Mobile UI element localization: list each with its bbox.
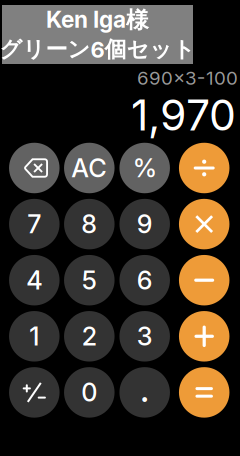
staticText: グリーン6個セット bbox=[0, 35, 195, 63]
staticText: . bbox=[140, 368, 149, 410]
staticText: 1 bbox=[29, 321, 39, 352]
button[interactable]: Toggle sign bbox=[9, 367, 59, 418]
button[interactable]: 1 bbox=[9, 311, 59, 362]
staticText: 0 bbox=[81, 377, 97, 408]
staticText: 8 bbox=[81, 209, 97, 239]
button[interactable]: Equals bbox=[179, 367, 229, 418]
staticText: 1,970 bbox=[131, 89, 236, 141]
button[interactable]: Divide bbox=[179, 143, 229, 193]
button[interactable]: Plus bbox=[179, 311, 229, 362]
button[interactable]: 3 bbox=[119, 311, 170, 362]
button[interactable]: AC bbox=[64, 143, 114, 193]
staticText: 6 bbox=[137, 265, 153, 296]
staticText: 690×3-100 bbox=[137, 67, 238, 89]
button[interactable]: 7 bbox=[9, 199, 59, 249]
staticText: AC bbox=[71, 153, 107, 183]
button[interactable]: 9 bbox=[119, 199, 170, 249]
staticText: 3 bbox=[137, 321, 153, 352]
staticText: 7 bbox=[27, 209, 41, 239]
staticText: 4 bbox=[26, 265, 42, 296]
button[interactable]: Delete bbox=[9, 143, 59, 193]
staticText: 5 bbox=[82, 265, 97, 296]
button[interactable]: % bbox=[119, 143, 170, 193]
button[interactable]: 0 bbox=[64, 367, 114, 418]
staticText: 9 bbox=[137, 209, 153, 239]
button[interactable]: Minus bbox=[179, 255, 229, 305]
button[interactable]: 2 bbox=[64, 311, 114, 362]
button[interactable]: . bbox=[119, 367, 170, 418]
button[interactable]: 6 bbox=[119, 255, 170, 305]
staticText: 2 bbox=[82, 321, 97, 352]
button[interactable]: 5 bbox=[64, 255, 114, 305]
staticText: % bbox=[133, 153, 157, 183]
button[interactable]: 4 bbox=[9, 255, 59, 305]
button[interactable]: Multiply bbox=[179, 199, 229, 249]
staticText: Ken Iga様 bbox=[46, 6, 149, 34]
button[interactable]: 8 bbox=[64, 199, 114, 249]
